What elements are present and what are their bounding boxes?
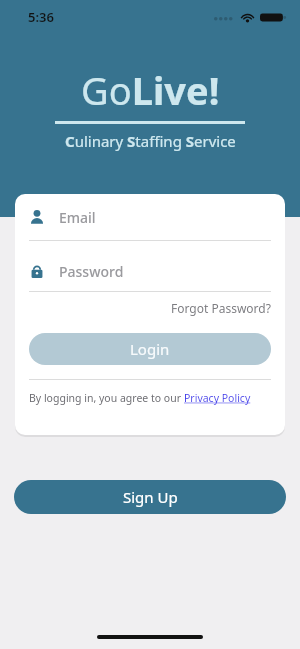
staticText: Email [59, 208, 96, 227]
staticText: Culinary Staffing Service [65, 131, 236, 151]
button[interactable]: Forgot Password? [157, 297, 285, 319]
button[interactable]: Email [15, 194, 285, 240]
staticText: Sign Up [123, 487, 178, 507]
staticText: Forgot Password? [171, 300, 271, 316]
staticText: 5:36 [28, 8, 54, 26]
staticText: By logging in, you agree to our [29, 391, 184, 405]
button[interactable]: Password [15, 251, 285, 291]
staticText: Password [59, 262, 124, 281]
staticText: Login [130, 339, 170, 359]
other: Home [97, 635, 203, 639]
button[interactable]: Login [29, 333, 271, 365]
staticText: Privacy Policy [184, 391, 251, 405]
staticText: GoLive! [81, 64, 220, 116]
button[interactable]: Privacy Policy [184, 391, 251, 405]
button[interactable]: Sign Up [14, 480, 286, 514]
